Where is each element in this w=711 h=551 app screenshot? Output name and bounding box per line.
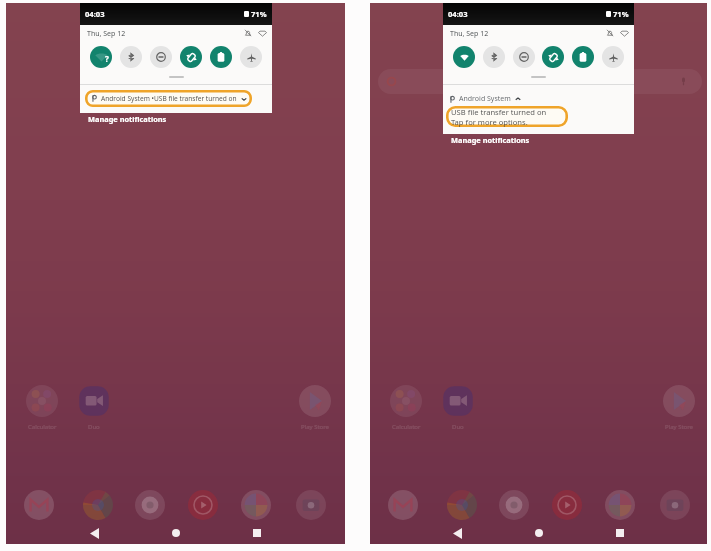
button[interactable]: Airplane mode: [240, 46, 262, 68]
button[interactable]: Auto rotate: [180, 46, 202, 68]
staticText: Play Store: [301, 423, 329, 431]
button[interactable]: Manage notifications: [451, 135, 530, 145]
button[interactable]: Silent mode: [605, 28, 615, 38]
staticText: ?: [105, 53, 109, 64]
button[interactable]: Auto rotate: [542, 46, 564, 68]
staticText: 04:03: [85, 9, 105, 19]
button[interactable]: Settings: [619, 28, 629, 38]
staticText: USB file transfer turned on: [451, 107, 547, 117]
button[interactable]: Silent mode: [243, 28, 253, 38]
button[interactable]: Do not disturb: [150, 46, 172, 68]
button[interactable]: Settings: [257, 28, 267, 38]
button[interactable]: Recent apps: [579, 522, 660, 544]
staticText: Thu, Sep 12: [87, 29, 126, 39]
button[interactable]: Android System •USB file transfer turned…: [85, 90, 252, 107]
staticText: Android System •USB file transfer turned…: [101, 94, 237, 103]
staticText: 71%: [251, 9, 267, 19]
button[interactable]: Wi-Fi: [453, 46, 475, 68]
button[interactable]: Airplane mode: [602, 46, 624, 68]
staticText: Calculator: [28, 423, 57, 431]
button[interactable]: Back: [417, 522, 498, 544]
button[interactable]: Manage notifications: [88, 114, 167, 124]
button[interactable]: Wi-Fi: [90, 46, 112, 68]
staticText: Android System: [459, 94, 511, 104]
staticText: Duo: [452, 423, 464, 431]
button[interactable]: Search: [378, 69, 702, 94]
button[interactable]: Recent apps: [216, 522, 297, 544]
button[interactable]: Home: [135, 522, 216, 544]
staticText: 71%: [613, 9, 629, 19]
button[interactable]: Bluetooth: [483, 46, 505, 68]
staticText: Tap for more options.: [451, 117, 528, 127]
button[interactable]: Battery saver: [210, 46, 232, 68]
staticText: Play Store: [665, 423, 693, 431]
button[interactable]: Home: [498, 522, 579, 544]
staticText: Thu, Sep 12: [450, 29, 489, 39]
button[interactable]: Do not disturb: [513, 46, 535, 68]
staticText: Duo: [88, 423, 100, 431]
button[interactable]: Back: [54, 522, 135, 544]
staticText: Calculator: [392, 423, 421, 431]
button[interactable]: USB file transfer turned on: [446, 106, 568, 127]
button[interactable]: Battery saver: [572, 46, 594, 68]
staticText: 04:03: [448, 9, 468, 19]
button[interactable]: Bluetooth: [120, 46, 142, 68]
